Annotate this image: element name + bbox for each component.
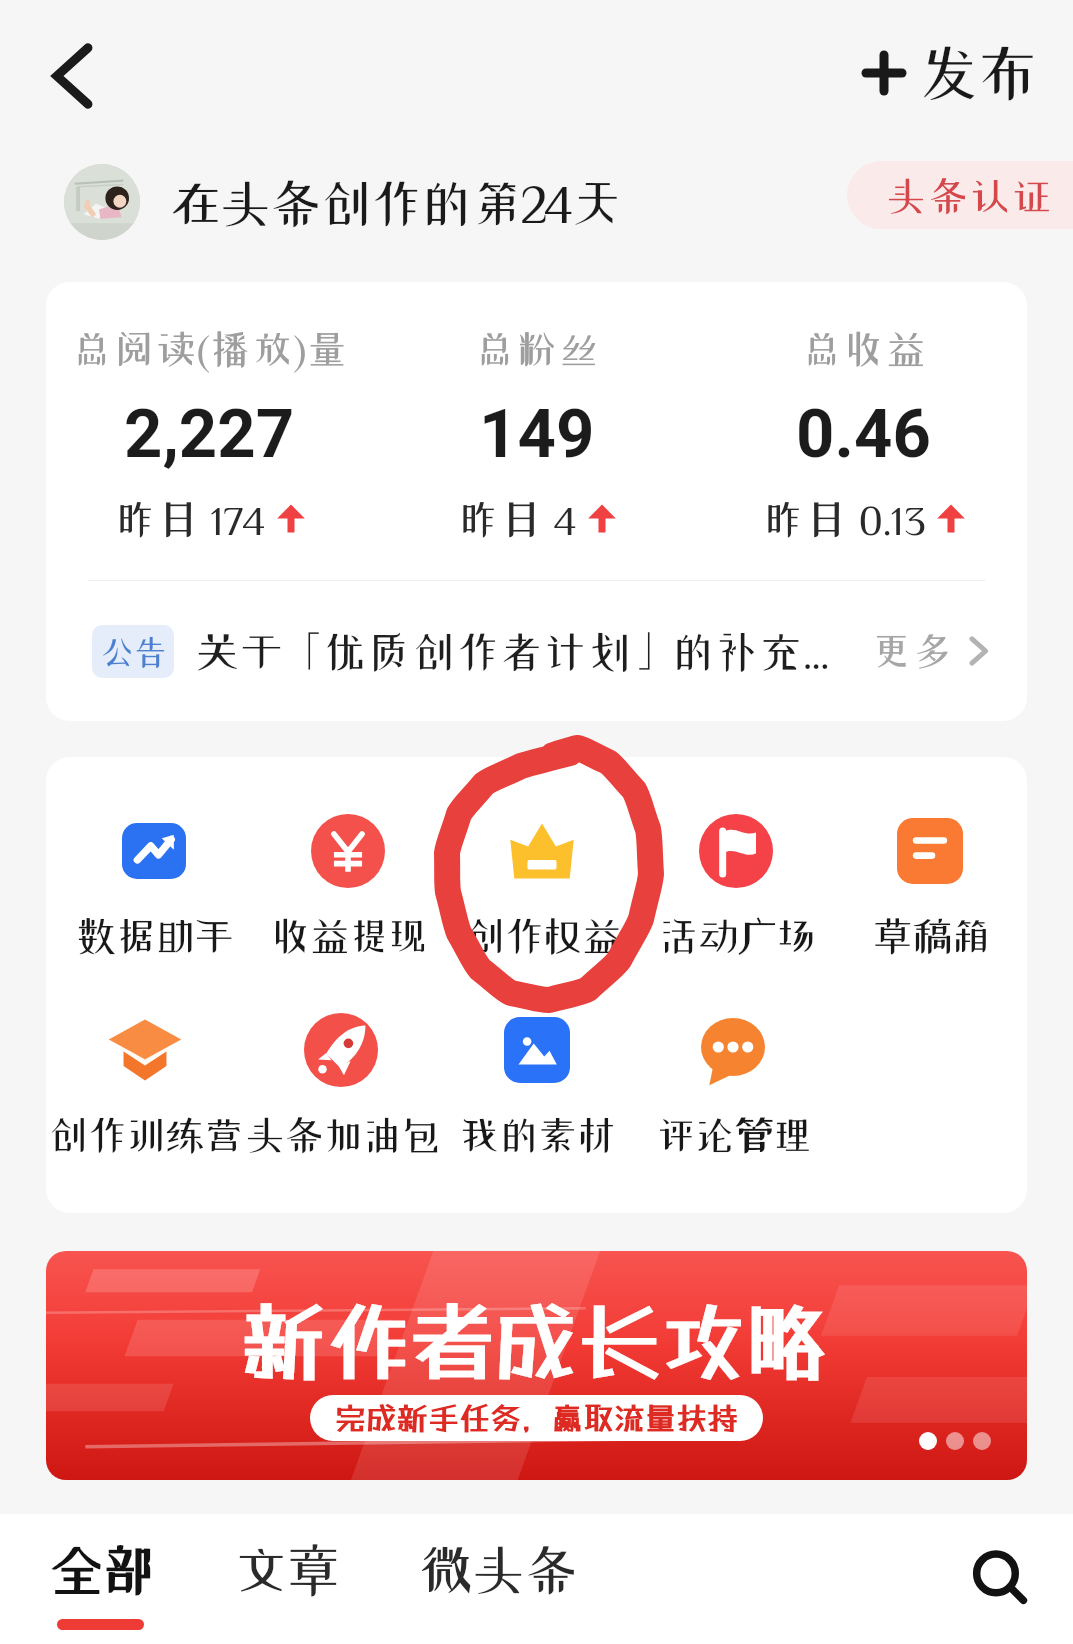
button[interactable]: 在头条创作的第24天 (64, 164, 620, 240)
staticText: 数据助手 (76, 915, 232, 956)
staticText: 昨日 4 (457, 498, 577, 540)
button[interactable]: 创作训练营 (46, 1014, 243, 1155)
staticText: 0.46 (796, 395, 931, 474)
button[interactable]: 我的素材 (439, 1014, 635, 1155)
button[interactable]: 总阅读(播放)量 (46, 328, 373, 540)
staticText: 总阅读(播放)量 (71, 328, 349, 369)
button[interactable]: 数据助手 (56, 815, 251, 956)
staticText: 在头条创作的第24天 (168, 176, 620, 229)
button[interactable]: 头条认证 (847, 161, 1073, 229)
button[interactable]: Back (26, 30, 118, 122)
button[interactable]: 总粉丝 (373, 328, 700, 540)
staticText: 总收益 (801, 328, 927, 369)
button[interactable]: 全部 (48, 1514, 153, 1630)
staticText: 头条加油包 (244, 1114, 439, 1155)
staticText: 发布 (917, 41, 1035, 104)
button[interactable]: 总收益 (700, 328, 1027, 540)
staticText: 总粉丝 (474, 328, 600, 369)
button[interactable]: 活动广场 (639, 815, 833, 956)
button[interactable]: 文章 (233, 1514, 338, 1630)
staticText: 创作训练营 (47, 1114, 242, 1155)
button[interactable]: 发布 (861, 41, 1035, 104)
button[interactable]: 收益提现 (251, 815, 445, 956)
staticText: 公告 (99, 634, 167, 669)
button[interactable]: 新作者成长攻略 (46, 1251, 1027, 1480)
staticText: 2,227 (124, 395, 295, 474)
staticText: 收益提现 (270, 915, 426, 956)
staticText: 草稿箱 (872, 915, 989, 956)
staticText: 关于「优质创作者计划」的补充... (195, 629, 829, 673)
staticText: 创作权益 (464, 915, 620, 956)
staticText: 文章 (233, 1542, 338, 1597)
button[interactable]: 评论管理 (635, 1014, 831, 1155)
staticText: 微头条 (418, 1542, 575, 1597)
button[interactable]: Search (953, 1531, 1049, 1627)
staticText: 活动广场 (658, 915, 814, 956)
staticText: 149 (479, 395, 595, 474)
staticText: 更多 (871, 631, 953, 671)
staticText: 新作者成长攻略 (242, 1292, 831, 1391)
button[interactable]: 头条加油包 (243, 1014, 439, 1155)
button[interactable]: 创作权益 (445, 815, 639, 956)
staticText: 评论管理 (655, 1114, 811, 1155)
staticText: 我的素材 (459, 1114, 615, 1155)
staticText: 头条认证 (885, 175, 1053, 216)
staticText: 昨日 174 (114, 498, 266, 540)
button[interactable]: 公告 (46, 581, 1027, 721)
button[interactable]: 草稿箱 (833, 815, 1027, 956)
staticText: 昨日 0.13 (762, 498, 926, 540)
button[interactable]: 微头条 (418, 1514, 575, 1630)
staticText: 全部 (48, 1542, 153, 1597)
staticText: 完成新手任务，赢取流量扶持 (335, 1400, 738, 1437)
